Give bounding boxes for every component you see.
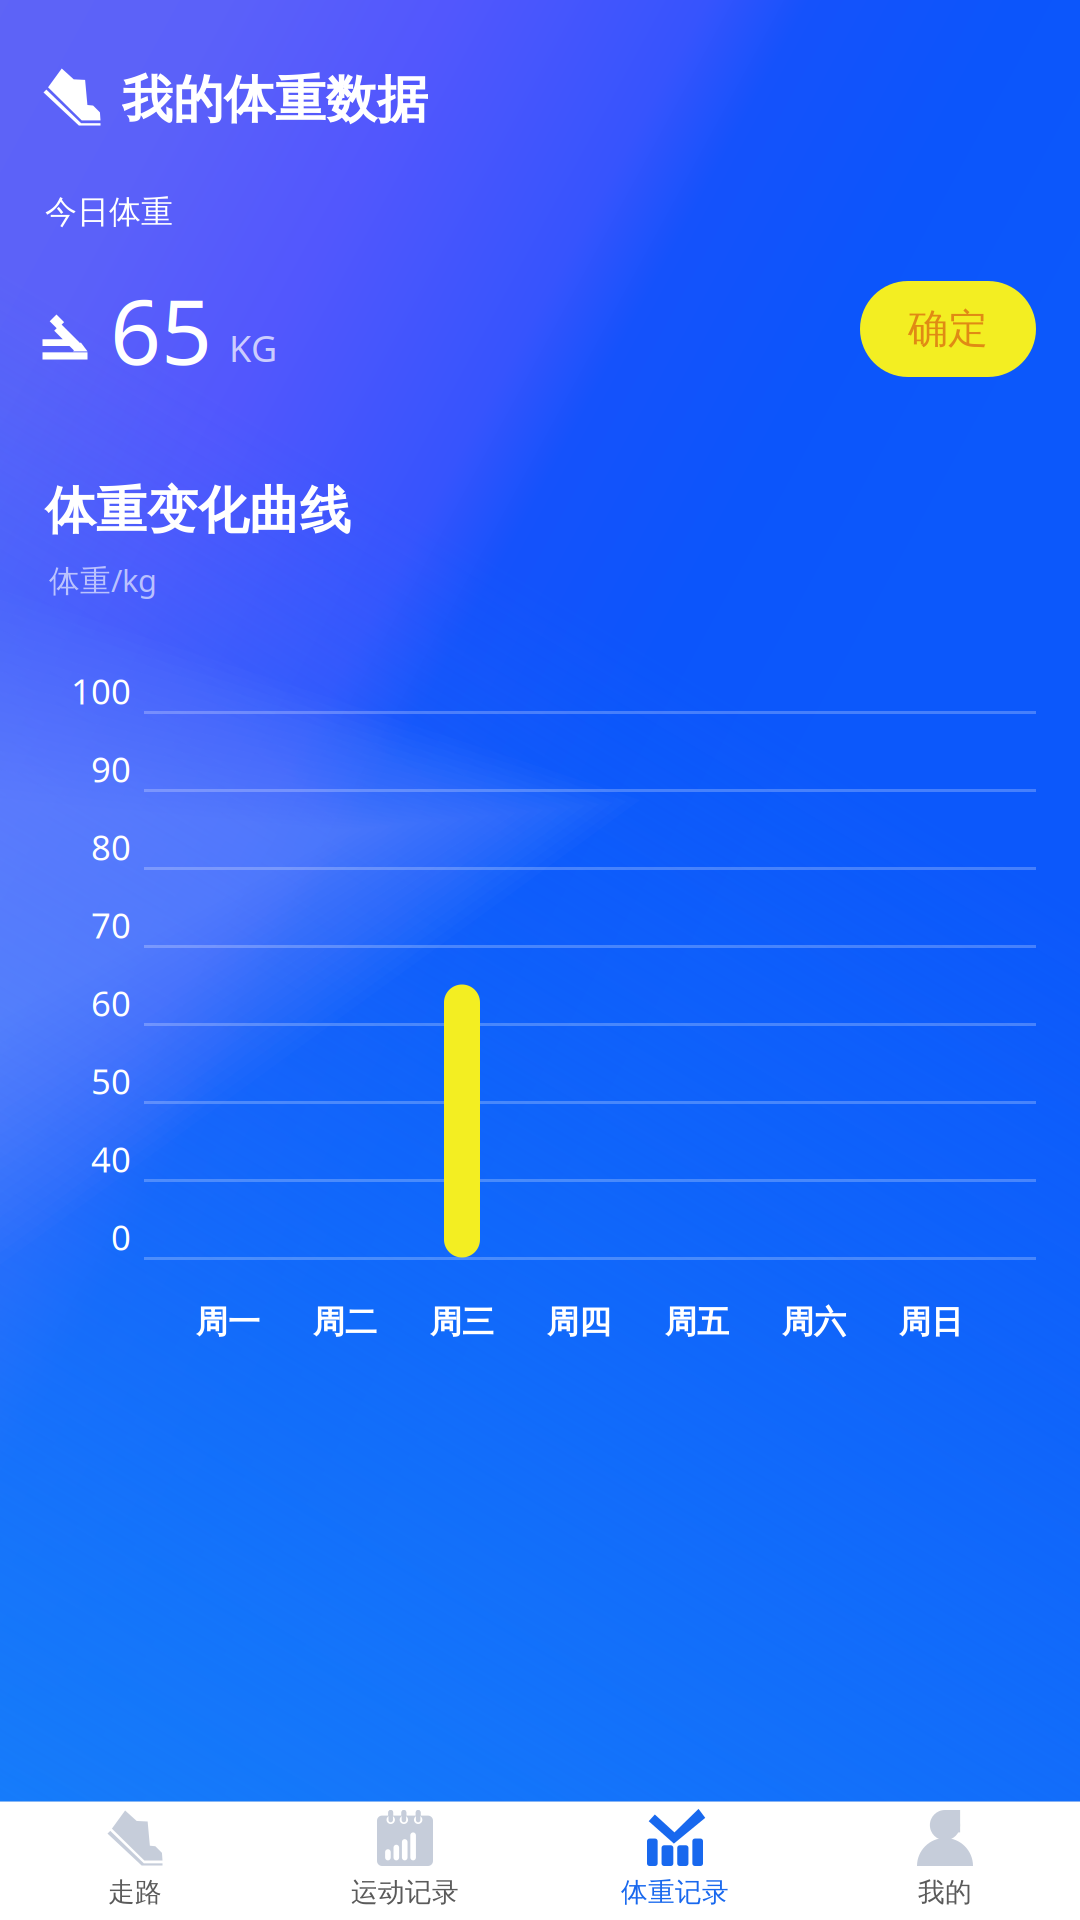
button[interactable]: 走路 [0,1802,270,1920]
staticText: 80 [91,824,131,870]
staticText: 周五 [665,1302,729,1342]
staticText: 体重记录 [621,1876,729,1909]
staticText: 走路 [108,1876,162,1909]
staticText: 今日体重 [45,192,173,232]
button[interactable]: 运动记录 [270,1802,540,1920]
staticText: 65 [110,271,212,389]
staticText: 周四 [547,1302,611,1342]
staticText: 周三 [430,1302,494,1342]
staticText: 70 [91,902,131,948]
button[interactable]: 体重记录 [540,1802,810,1920]
staticText: 周六 [782,1302,846,1342]
button[interactable]: 我的 [810,1802,1080,1920]
staticText: 确定 [908,304,988,353]
staticText: 0 [111,1214,131,1260]
staticText: 100 [71,668,131,714]
staticText: 60 [91,980,131,1026]
staticText: 50 [91,1058,131,1104]
staticText: 体重/kg [49,560,157,600]
staticText: 40 [91,1136,131,1182]
staticText: 周二 [313,1302,377,1342]
staticText: KG [229,324,277,372]
staticText: 我的 [918,1876,972,1909]
staticText: 周一 [196,1302,260,1342]
staticText: 周日 [899,1302,963,1342]
button[interactable]: 确定 [860,281,1036,377]
staticText: 我的体重数据 [122,69,428,131]
staticText: 90 [91,746,131,792]
staticText: 运动记录 [351,1876,459,1909]
staticText: 体重变化曲线 [45,480,351,542]
